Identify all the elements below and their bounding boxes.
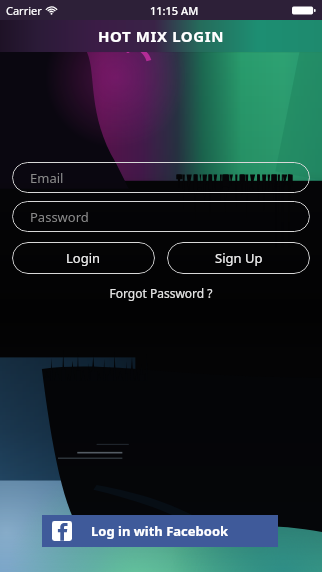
button[interactable]: Log in with Facebook [42,515,278,547]
button[interactable]: Forgot Password ? [101,283,221,303]
staticText: Log in with Facebook [91,522,229,540]
staticText: Sign Up [215,249,263,267]
staticText: Carrier [6,3,42,18]
staticText: Email [30,169,64,187]
button[interactable]: Email [12,162,310,193]
staticText: HOT MIX LOGIN [98,26,225,46]
staticText: Forgot Password ? [109,285,213,301]
staticText: Password [30,208,89,226]
staticText: Login [66,249,101,267]
staticText: 11:15 AM [150,3,199,18]
button[interactable]: Password [12,201,310,232]
button[interactable]: Sign Up [167,242,310,274]
button[interactable]: Login [12,242,155,274]
